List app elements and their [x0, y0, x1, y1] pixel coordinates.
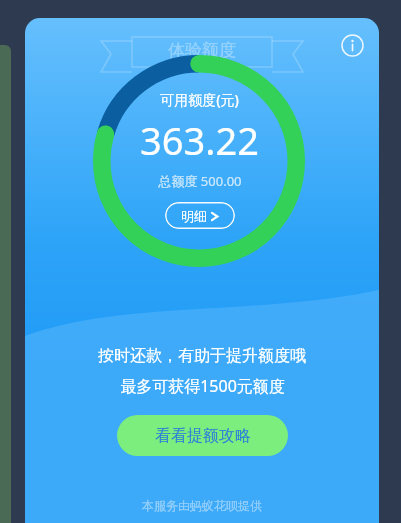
staticText: 最多可获得1500元额度	[120, 375, 285, 397]
staticText: 按时还款，有助于提升额度哦	[98, 346, 306, 366]
staticText: 明细	[181, 208, 207, 224]
staticText: 363.22	[140, 114, 259, 166]
button[interactable]: 看看提额攻略	[117, 415, 288, 456]
staticText: 体验额度	[168, 40, 236, 61]
staticText: 总额度 500.00	[158, 172, 242, 190]
button[interactable]: 明细	[165, 202, 235, 229]
staticText: 看看提额攻略	[155, 426, 251, 446]
button[interactable]: Information	[335, 28, 369, 62]
staticText: 本服务由蚂蚁花呗提供	[142, 498, 262, 513]
staticText: 可用额度(元)	[160, 90, 239, 109]
